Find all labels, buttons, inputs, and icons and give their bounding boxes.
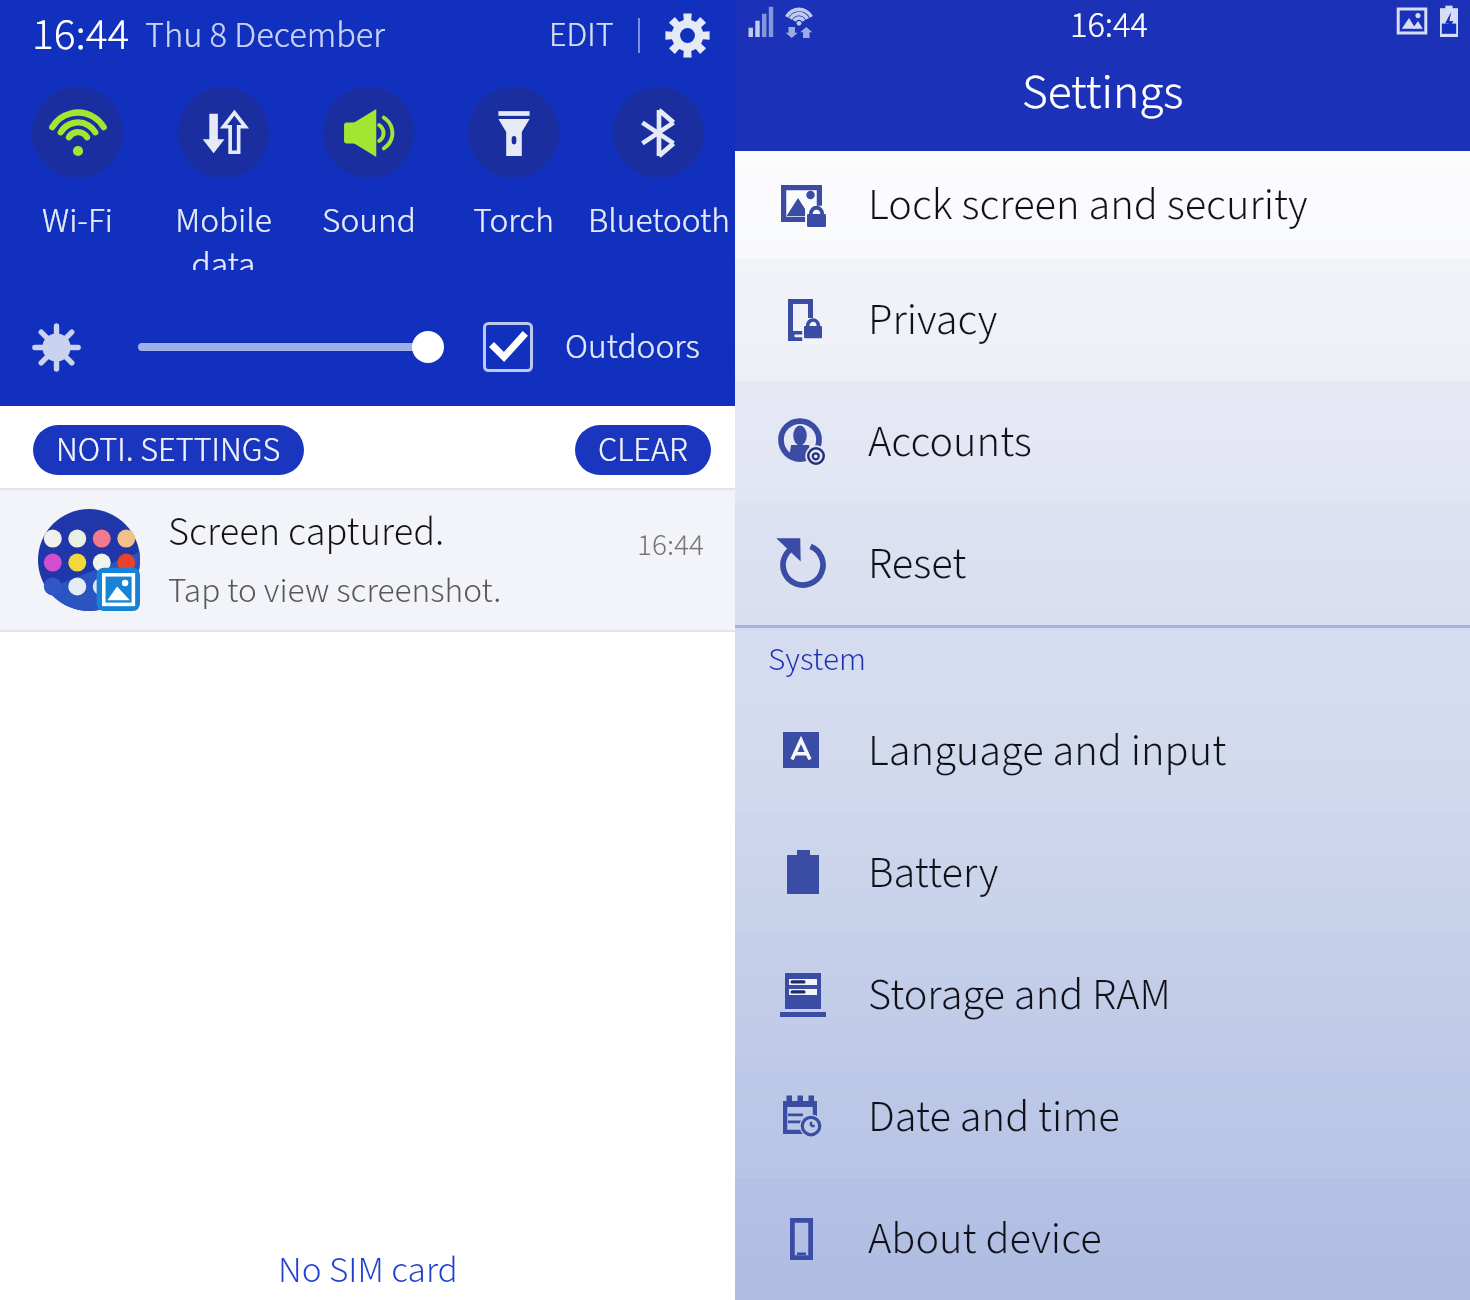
staticText: Lock screen and security xyxy=(868,174,1308,237)
button[interactable]: CLEAR xyxy=(575,425,711,475)
button[interactable]: Sound xyxy=(296,70,441,270)
staticText: Mobile data xyxy=(175,196,272,270)
staticText: Language and input xyxy=(868,720,1227,783)
staticText: Privacy xyxy=(868,289,998,352)
staticText: About device xyxy=(868,1208,1102,1271)
staticText: 16:44 xyxy=(637,523,705,567)
button[interactable]: Lock screen and security xyxy=(735,151,1470,259)
button[interactable]: Wi-Fi xyxy=(4,70,150,270)
staticText: Outdoors xyxy=(565,322,700,372)
staticText: Accounts xyxy=(868,411,1032,474)
staticText: System xyxy=(768,636,867,683)
button[interactable]: Settings xyxy=(664,12,710,58)
staticText: Settings xyxy=(1022,58,1184,128)
staticText: Reset xyxy=(868,533,967,596)
button[interactable]: EDIT xyxy=(541,3,622,67)
button[interactable]: Reset xyxy=(735,503,1470,625)
staticText: Bluetooth xyxy=(588,196,730,246)
staticText: Torch xyxy=(473,196,554,246)
staticText: CLEAR xyxy=(598,426,688,474)
button[interactable]: Battery xyxy=(735,812,1470,934)
button[interactable]: Screen captured. xyxy=(0,490,735,630)
staticText: No SIM card xyxy=(278,1244,458,1297)
staticText: Thu 8 December xyxy=(145,10,386,61)
staticText: 16:44 xyxy=(32,3,130,67)
button[interactable]: Outdoors xyxy=(483,322,700,372)
button[interactable]: Date and time xyxy=(735,1056,1470,1178)
button[interactable]: Bluetooth xyxy=(586,70,731,270)
button[interactable]: Accounts xyxy=(735,381,1470,503)
staticText: Battery xyxy=(868,842,999,905)
button[interactable]: Privacy xyxy=(735,259,1470,381)
staticText: Wi-Fi xyxy=(42,196,113,246)
staticText: NOTI. SETTINGS xyxy=(56,426,281,474)
button[interactable]: Torch xyxy=(441,70,586,270)
staticText: Tap to view screenshot. xyxy=(168,566,502,616)
button[interactable]: Storage and RAM xyxy=(735,934,1470,1056)
button[interactable]: Mobile data xyxy=(150,70,296,270)
staticText: EDIT xyxy=(549,11,614,59)
button[interactable]: Language and input xyxy=(735,690,1470,812)
staticText: Screen captured. xyxy=(168,504,445,561)
staticText: Sound xyxy=(322,196,416,246)
staticText: 16:44 xyxy=(1070,0,1148,42)
button[interactable]: NOTI. SETTINGS xyxy=(33,425,304,475)
staticText: Date and time xyxy=(868,1086,1120,1149)
button[interactable]: About device xyxy=(735,1178,1470,1300)
staticText: Storage and RAM xyxy=(868,964,1171,1027)
